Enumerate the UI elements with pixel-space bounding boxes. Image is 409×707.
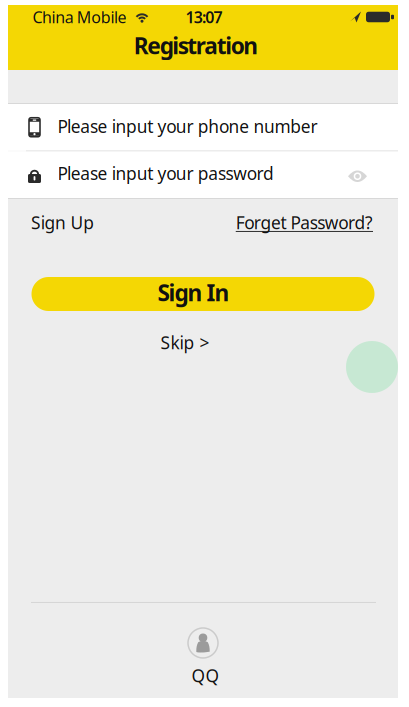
staticText: Please input your phone number (57, 115, 317, 138)
staticText: Skip > (160, 331, 209, 354)
staticText: China Mobile (32, 6, 126, 28)
button[interactable]: Assistant (346, 341, 398, 393)
button[interactable]: Sign In (31, 277, 374, 311)
button[interactable]: Password (8, 151, 398, 198)
staticText: QQ (191, 664, 219, 687)
button[interactable]: Phone number (8, 104, 398, 150)
staticText: Sign In (157, 277, 229, 307)
button[interactable]: Forget Password? (236, 211, 373, 234)
button[interactable]: QQ (186, 628, 219, 687)
staticText: Registration (134, 30, 258, 60)
button[interactable]: Sign Up (31, 211, 94, 234)
staticText: Please input your password (57, 162, 274, 185)
staticText: Forget Password? (236, 211, 373, 234)
button[interactable]: Skip > (160, 331, 209, 354)
staticText: 13:07 (186, 6, 222, 28)
staticText: Sign Up (31, 211, 94, 234)
button[interactable]: Show password (342, 164, 373, 188)
